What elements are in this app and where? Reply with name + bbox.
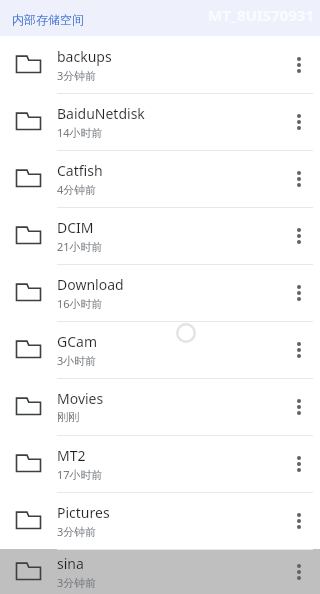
button[interactable]: More options [282, 264, 316, 321]
button[interactable]: More options [282, 150, 316, 207]
staticText: 内部存储空间 [12, 12, 84, 27]
staticText: 3分钟前 [57, 68, 97, 83]
button[interactable]: More options [282, 93, 316, 150]
button[interactable]: More options [282, 492, 316, 549]
staticText: MT_8UIS70931 [208, 5, 314, 25]
staticText: 17小时前 [57, 467, 103, 482]
button[interactable]: Catfish [0, 150, 320, 207]
button[interactable]: More options [282, 435, 316, 492]
staticText: DCIM [57, 218, 94, 237]
staticText: 21小时前 [57, 239, 103, 254]
button[interactable]: BaiduNetdisk [0, 93, 320, 150]
staticText: 4分钟前 [57, 182, 97, 197]
button[interactable]: More options [282, 36, 316, 93]
button[interactable]: GCam [0, 321, 320, 378]
staticText: 3分钟前 [57, 575, 97, 590]
button[interactable]: Movies [0, 378, 320, 435]
staticText: 3分钟前 [57, 524, 97, 539]
staticText: MT2 [57, 446, 86, 465]
staticText: GCam [57, 332, 97, 351]
button[interactable]: DCIM [0, 207, 320, 264]
button[interactable]: More options [282, 549, 316, 594]
button[interactable]: More options [282, 378, 316, 435]
button[interactable]: sina [0, 549, 320, 594]
staticText: BaiduNetdisk [57, 104, 145, 123]
staticText: Pictures [57, 503, 110, 522]
staticText: 14小时前 [57, 125, 103, 140]
staticText: Catfish [57, 161, 103, 180]
staticText: Movies [57, 389, 104, 408]
button[interactable]: Pictures [0, 492, 320, 549]
button[interactable]: Download [0, 264, 320, 321]
button[interactable]: backups [0, 36, 320, 93]
button[interactable]: More options [282, 321, 316, 378]
staticText: 3小时前 [57, 353, 97, 368]
staticText: 刚刚 [57, 410, 79, 424]
staticText: backups [57, 47, 112, 66]
staticText: sina [57, 554, 84, 573]
staticText: Download [57, 275, 124, 294]
button[interactable]: More options [282, 207, 316, 264]
button[interactable]: MT2 [0, 435, 320, 492]
staticText: 16小时前 [57, 296, 103, 311]
